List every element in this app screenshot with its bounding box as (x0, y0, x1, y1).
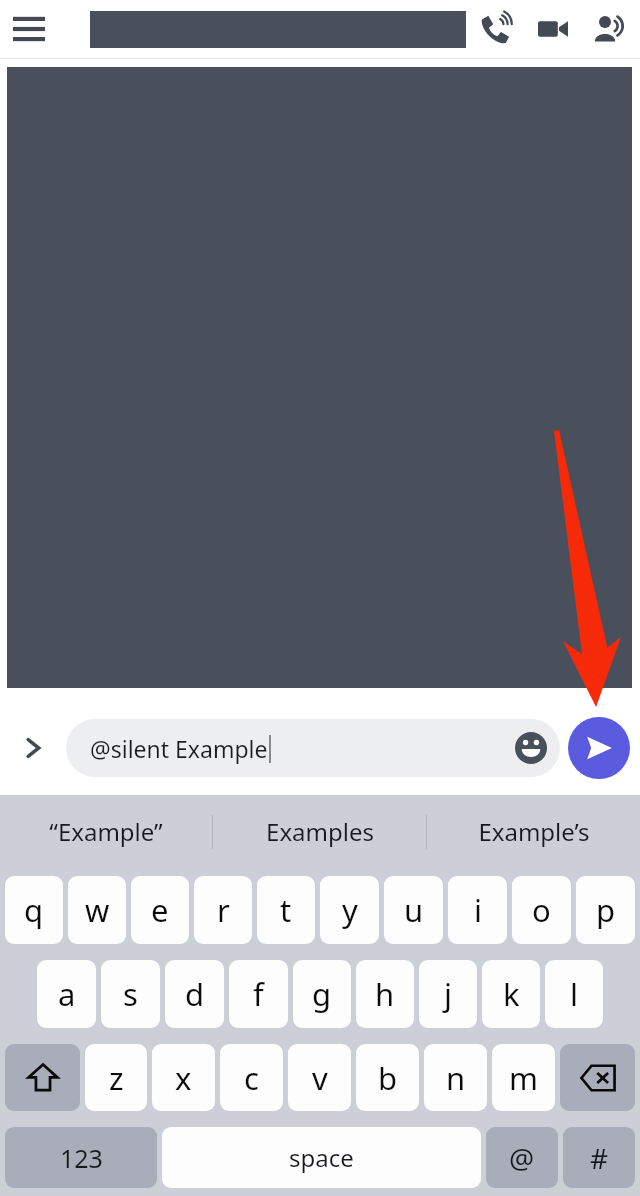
button[interactable]: Shift (5, 1044, 80, 1111)
button[interactable]: p (576, 876, 635, 944)
staticText: Examples (266, 815, 374, 848)
button[interactable]: x (152, 1044, 215, 1111)
button[interactable]: Video call (524, 0, 582, 58)
staticText: s (123, 973, 138, 1015)
staticText: l (570, 973, 578, 1015)
button[interactable]: w (68, 876, 126, 944)
staticText: v (312, 1057, 328, 1099)
button[interactable]: @silent Example (66, 719, 560, 777)
button[interactable]: g (293, 960, 351, 1028)
button[interactable]: o (512, 876, 571, 944)
staticText: z (109, 1057, 124, 1099)
staticText: 123 (60, 1141, 103, 1175)
staticText: e (151, 889, 169, 931)
staticText: u (404, 889, 424, 931)
button[interactable]: Examples (213, 795, 426, 868)
staticText: b (378, 1057, 398, 1099)
button[interactable]: Expand (0, 715, 66, 781)
staticText: @ (509, 1139, 535, 1177)
button[interactable]: space (162, 1127, 481, 1188)
button[interactable]: i (448, 876, 507, 944)
staticText: “Example” (49, 815, 163, 848)
staticText: w (85, 889, 110, 931)
staticText: Example’s (478, 815, 590, 848)
button[interactable]: c (220, 1044, 283, 1111)
button[interactable]: 123 (5, 1127, 157, 1188)
button[interactable]: n (424, 1044, 487, 1111)
button[interactable]: l (545, 960, 603, 1028)
staticText: a (58, 973, 76, 1015)
staticText: h (375, 973, 395, 1015)
button[interactable]: j (419, 960, 477, 1028)
button[interactable]: Example’s (427, 795, 640, 868)
button[interactable]: Add people (582, 0, 634, 58)
staticText: g (312, 973, 332, 1015)
staticText: k (503, 973, 520, 1015)
button[interactable]: s (101, 960, 160, 1028)
button[interactable]: Backspace (560, 1044, 635, 1111)
button[interactable]: e (131, 876, 189, 944)
staticText: x (175, 1057, 192, 1099)
staticText: i (474, 889, 482, 931)
staticText: y (342, 889, 358, 931)
staticText: n (446, 1057, 466, 1099)
button[interactable]: q (5, 876, 63, 944)
staticText: p (596, 889, 616, 931)
button[interactable]: a (37, 960, 96, 1028)
button[interactable]: m (492, 1044, 555, 1111)
staticText: j (444, 973, 452, 1015)
button[interactable]: y (320, 876, 379, 944)
button[interactable]: r (194, 876, 252, 944)
button[interactable]: # (563, 1127, 635, 1188)
button[interactable]: Call (466, 0, 524, 58)
staticText: d (185, 973, 205, 1015)
button[interactable]: h (356, 960, 414, 1028)
staticText: o (532, 889, 551, 931)
button[interactable]: f (229, 960, 288, 1028)
staticText: space (289, 1141, 354, 1174)
button[interactable]: k (482, 960, 540, 1028)
staticText: q (24, 889, 44, 931)
button[interactable]: t (257, 876, 315, 944)
button[interactable]: Emoji (502, 719, 560, 777)
staticText: t (280, 889, 292, 931)
staticText: # (590, 1139, 609, 1177)
staticText: @silent Example (90, 733, 268, 764)
button[interactable]: d (165, 960, 224, 1028)
button[interactable]: “Example” (0, 795, 212, 868)
staticText: f (253, 973, 264, 1015)
staticText: c (244, 1057, 259, 1099)
button[interactable]: v (288, 1044, 351, 1111)
staticText: m (509, 1057, 538, 1099)
button[interactable]: b (356, 1044, 419, 1111)
staticText: r (217, 889, 230, 931)
button[interactable]: Send (568, 717, 630, 779)
button[interactable]: @ (486, 1127, 558, 1188)
button[interactable]: z (85, 1044, 147, 1111)
button[interactable]: u (384, 876, 443, 944)
button[interactable]: Menu (0, 0, 58, 58)
